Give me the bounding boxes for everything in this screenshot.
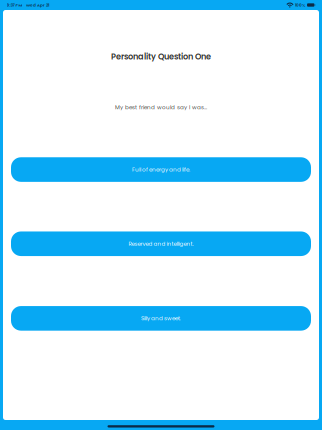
- button[interactable]: Reserved and intelligent.: [11, 231, 311, 256]
- staticText: My best friend would say I was...: [115, 103, 207, 111]
- staticText: Personality Question One: [111, 51, 211, 62]
- staticText: 8:37 PM: [6, 2, 22, 8]
- staticText: Wed Apr 21: [26, 2, 49, 8]
- button[interactable]: Full of energy and life.: [11, 157, 311, 182]
- button[interactable]: Silly and sweet.: [11, 306, 311, 331]
- staticText: Silly and sweet.: [141, 314, 181, 322]
- staticText: 100%: [295, 2, 305, 8]
- staticText: Full of energy and life.: [132, 166, 190, 173]
- staticText: Reserved and intelligent.: [128, 240, 193, 248]
